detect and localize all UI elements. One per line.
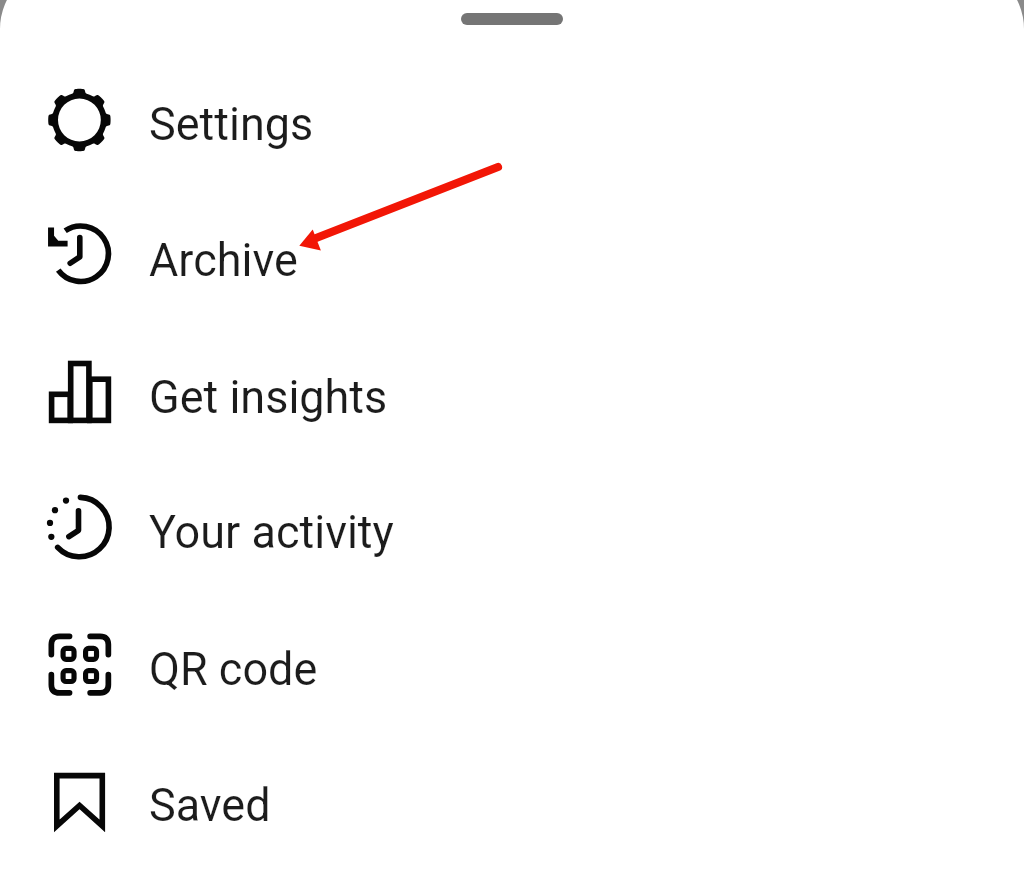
staticText: Your activity <box>149 505 394 559</box>
other: Archive <box>43 220 115 292</box>
button[interactable]: Settings <box>0 70 1024 170</box>
other: Saved <box>43 765 115 837</box>
other: Drag handle <box>461 13 563 25</box>
other: Settings <box>43 84 115 156</box>
other: Insights <box>43 357 115 429</box>
staticText: Saved <box>149 778 271 832</box>
button[interactable]: Activity <box>0 478 1024 578</box>
staticText: Archive <box>149 233 299 287</box>
button[interactable]: QR code <box>0 615 1024 715</box>
staticText: Get insights <box>149 370 388 424</box>
staticText: Settings <box>149 97 313 151</box>
button[interactable]: Archive <box>0 206 1024 306</box>
staticText: QR code <box>149 642 318 696</box>
other: Activity <box>43 492 115 564</box>
button[interactable]: Insights <box>0 343 1024 443</box>
button[interactable]: Saved <box>0 751 1024 851</box>
other: QR code <box>43 629 115 701</box>
